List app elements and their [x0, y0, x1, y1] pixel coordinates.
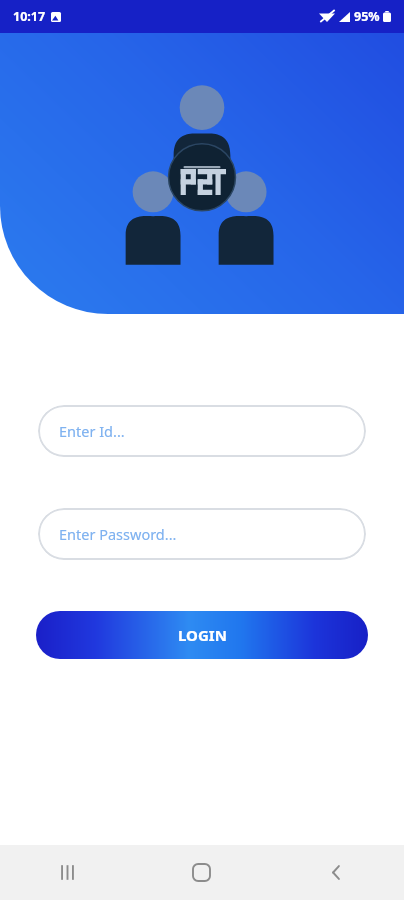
staticText: 10:17: [13, 8, 46, 25]
button[interactable]: Recent apps: [0, 845, 134, 900]
button[interactable]: LOGIN: [36, 611, 368, 659]
staticText: 95%: [354, 8, 380, 25]
button[interactable]: Enter Password...: [38, 508, 366, 560]
staticText: Enter Password...: [59, 524, 177, 544]
button[interactable]: Enter Id...: [38, 405, 366, 457]
staticText: LOGIN: [178, 625, 227, 645]
staticText: Enter Id...: [59, 421, 125, 441]
button[interactable]: Home: [134, 845, 269, 900]
button[interactable]: Back: [269, 845, 404, 900]
